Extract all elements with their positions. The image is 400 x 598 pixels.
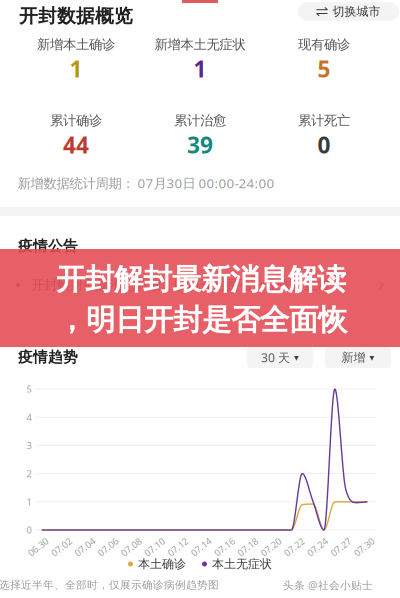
staticText: 1 — [193, 54, 206, 84]
staticText: 本土无症状 — [212, 557, 272, 571]
button[interactable]: 切换城市 — [298, 2, 399, 21]
staticText: 44 — [63, 130, 89, 160]
staticText: 新增本土确诊 — [37, 36, 115, 53]
staticText: 1 — [26, 496, 31, 508]
staticText: 时间选择近半年、全部时，仅展示确诊病例趋势图 — [0, 578, 219, 591]
staticText: 头条 @社会小贴士 — [283, 578, 373, 592]
staticText: 切换城市 — [332, 4, 380, 19]
staticText: 0 — [317, 130, 330, 160]
staticText: 07.20 — [259, 541, 282, 553]
staticText: 07.30 — [352, 541, 375, 553]
button[interactable]: 开封解封最新消息解读，明日开封是否全面恢复正常 — [16, 274, 384, 296]
staticText: ▾ — [294, 352, 299, 363]
staticText: 开封解封最新消息解读，明日开封是否全面恢复正常 — [31, 277, 330, 293]
staticText: ，明日开封是否全面恢 — [57, 302, 347, 338]
staticText: 累计死亡 — [298, 112, 350, 129]
staticText: 07.22 — [283, 541, 306, 553]
staticText: 新增数据统计周期： 07月30日 00:00-24:00 — [17, 174, 274, 192]
staticText: 3 — [26, 439, 31, 452]
staticText: 07.12 — [166, 541, 189, 553]
staticText: 开封数据概览 — [19, 4, 133, 27]
staticText: 07.18 — [236, 541, 259, 553]
staticText: ▾ — [369, 352, 374, 363]
staticText: 1 — [69, 54, 82, 84]
staticText: 4 — [26, 411, 31, 423]
staticText: 累计确诊 — [50, 112, 102, 129]
staticText: 5 — [26, 383, 31, 395]
staticText: 07.27 — [329, 541, 352, 553]
button[interactable]: 30 天 — [247, 347, 313, 368]
staticText: 07.10 — [143, 541, 166, 553]
staticText: 5 — [317, 54, 330, 84]
staticText: 累计治愈 — [174, 112, 226, 129]
staticText: 07.14 — [189, 541, 212, 553]
staticText: 07.16 — [213, 541, 236, 553]
button[interactable]: 新增 — [325, 347, 391, 368]
staticText: 现有确诊 — [298, 36, 350, 53]
staticText: 06.30 — [26, 541, 49, 553]
staticText: 疫情公告 — [18, 237, 78, 255]
staticText: 07.04 — [73, 541, 96, 553]
staticText: 新增本土无症状 — [154, 36, 245, 53]
staticText: 疫情趋势 — [18, 348, 78, 366]
staticText: 39 — [187, 130, 213, 160]
staticText: 07.02 — [50, 541, 73, 553]
staticText: 2 — [26, 467, 31, 480]
staticText: 0 — [26, 524, 31, 536]
staticText: 开封解封最新消息解读 — [56, 261, 346, 297]
staticText: 新增 — [341, 350, 365, 365]
staticText: 07.24 — [306, 541, 329, 553]
staticText: 30 天 — [261, 349, 290, 365]
staticText: 07.06 — [96, 541, 119, 553]
staticText: 本土确诊 — [138, 557, 186, 571]
staticText: 07.08 — [120, 541, 143, 553]
